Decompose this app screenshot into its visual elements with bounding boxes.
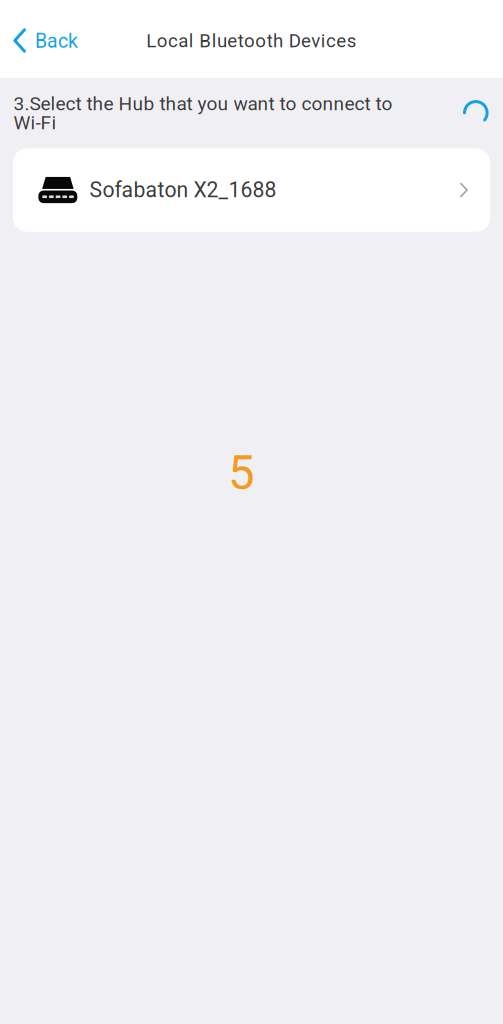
button[interactable]: Sofabaton X2_1688 [13, 148, 490, 232]
staticText: Wi-Fi [13, 111, 56, 134]
staticText: 3.Select the Hub that you want to connec… [13, 92, 392, 115]
staticText: 5 [228, 445, 255, 501]
staticText: Local Bluetooth Devices [146, 30, 357, 52]
staticText: Sofabaton X2_1688 [90, 178, 277, 202]
button[interactable]: Back [0, 19, 88, 59]
staticText: Back [35, 30, 78, 52]
